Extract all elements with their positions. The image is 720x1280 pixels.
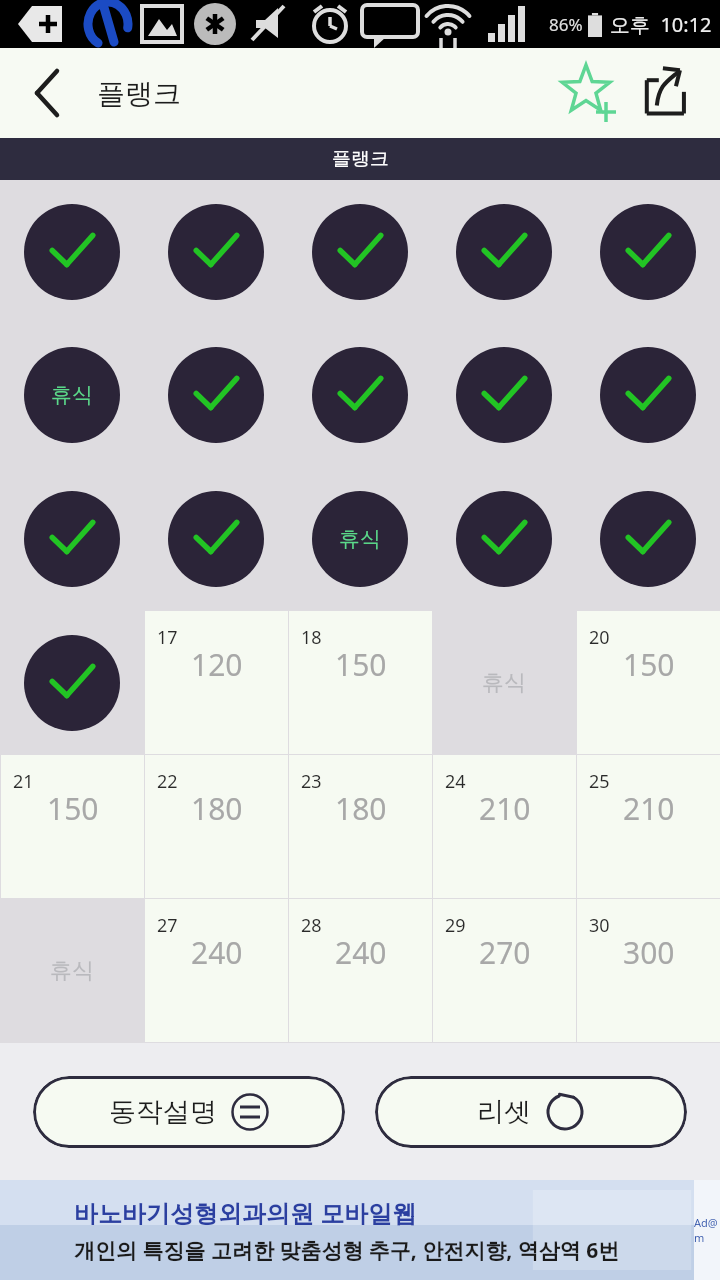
button[interactable]: [144, 180, 288, 323]
button[interactable]: 27: [145, 899, 288, 1042]
staticText: 27: [157, 913, 178, 938]
staticText: 210: [479, 788, 531, 829]
staticText: 휴식: [482, 669, 526, 697]
staticText: Ad@m: [694, 1215, 720, 1245]
button[interactable]: 28: [289, 899, 432, 1042]
button[interactable]: [288, 323, 432, 467]
staticText: 86%: [549, 13, 583, 36]
button[interactable]: 18: [289, 611, 432, 754]
button[interactable]: [144, 323, 288, 467]
staticText: 270: [479, 932, 531, 973]
staticText: 180: [335, 788, 387, 829]
button[interactable]: 24: [433, 755, 576, 898]
staticText: 23: [301, 769, 322, 794]
button[interactable]: 29: [433, 899, 576, 1042]
button[interactable]: [432, 180, 576, 323]
button[interactable]: [0, 180, 144, 323]
button[interactable]: [0, 611, 144, 755]
button[interactable]: 휴식: [0, 323, 144, 467]
staticText: 바노바기성형외과의원 모바일웹: [74, 1196, 417, 1229]
staticText: 동작설명: [109, 1095, 217, 1129]
staticText: 180: [191, 788, 243, 829]
button[interactable]: [576, 180, 720, 323]
button[interactable]: 25: [577, 755, 720, 898]
staticText: 120: [191, 644, 243, 685]
staticText: 17: [157, 625, 178, 650]
staticText: 플랭크: [332, 147, 389, 171]
staticText: 개인의 특징을 고려한 맞춤성형 추구, 안전지향, 역삼역 6번: [74, 1236, 620, 1265]
staticText: 리셋: [477, 1095, 531, 1129]
staticText: 24: [445, 769, 466, 794]
button[interactable]: 30: [577, 899, 720, 1042]
button[interactable]: [576, 323, 720, 467]
staticText: 150: [623, 644, 675, 685]
staticText: 150: [47, 788, 99, 829]
button[interactable]: [288, 180, 432, 323]
staticText: 300: [623, 932, 675, 973]
button[interactable]: 22: [145, 755, 288, 898]
staticText: 240: [191, 932, 243, 973]
staticText: 25: [589, 769, 610, 794]
button[interactable]: 휴식: [432, 611, 576, 755]
staticText: 29: [445, 913, 466, 938]
button[interactable]: [432, 467, 576, 611]
button[interactable]: [144, 467, 288, 611]
button[interactable]: 바노바기성형외과의원 모바일웹: [0, 1180, 720, 1280]
staticText: 플랭크: [97, 76, 181, 111]
staticText: 240: [335, 932, 387, 973]
staticText: 20: [589, 625, 610, 650]
staticText: 휴식: [51, 382, 93, 408]
staticText: 150: [335, 644, 387, 685]
button[interactable]: Share: [634, 61, 698, 125]
button[interactable]: Back: [18, 63, 78, 123]
button[interactable]: Favorite: [556, 61, 620, 125]
button[interactable]: [0, 467, 144, 611]
staticText: 30: [589, 913, 610, 938]
button[interactable]: 20: [577, 611, 720, 754]
staticText: 휴식: [339, 526, 381, 552]
button[interactable]: 21: [1, 755, 144, 898]
button[interactable]: 동작설명: [33, 1076, 345, 1148]
button[interactable]: 리셋: [375, 1076, 687, 1148]
button[interactable]: 휴식: [288, 467, 432, 611]
staticText: 210: [623, 788, 675, 829]
button[interactable]: 17: [145, 611, 288, 754]
staticText: 오후 10:12: [610, 11, 712, 38]
staticText: 21: [13, 769, 34, 794]
button[interactable]: [576, 467, 720, 611]
staticText: 휴식: [50, 957, 94, 985]
staticText: 22: [157, 769, 178, 794]
staticText: 18: [301, 625, 322, 650]
button[interactable]: [432, 323, 576, 467]
button[interactable]: 휴식: [0, 899, 144, 1043]
button[interactable]: 23: [289, 755, 432, 898]
staticText: 28: [301, 913, 322, 938]
